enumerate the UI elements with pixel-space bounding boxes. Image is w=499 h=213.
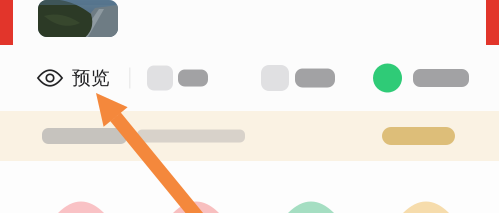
button[interactable]: Share to WeChat — [373, 57, 469, 98]
button[interactable]: Option — [147, 59, 208, 96]
staticText: 预览 — [72, 66, 110, 89]
button[interactable]: 预览 — [37, 59, 110, 97]
button[interactable]: Option — [261, 59, 335, 97]
